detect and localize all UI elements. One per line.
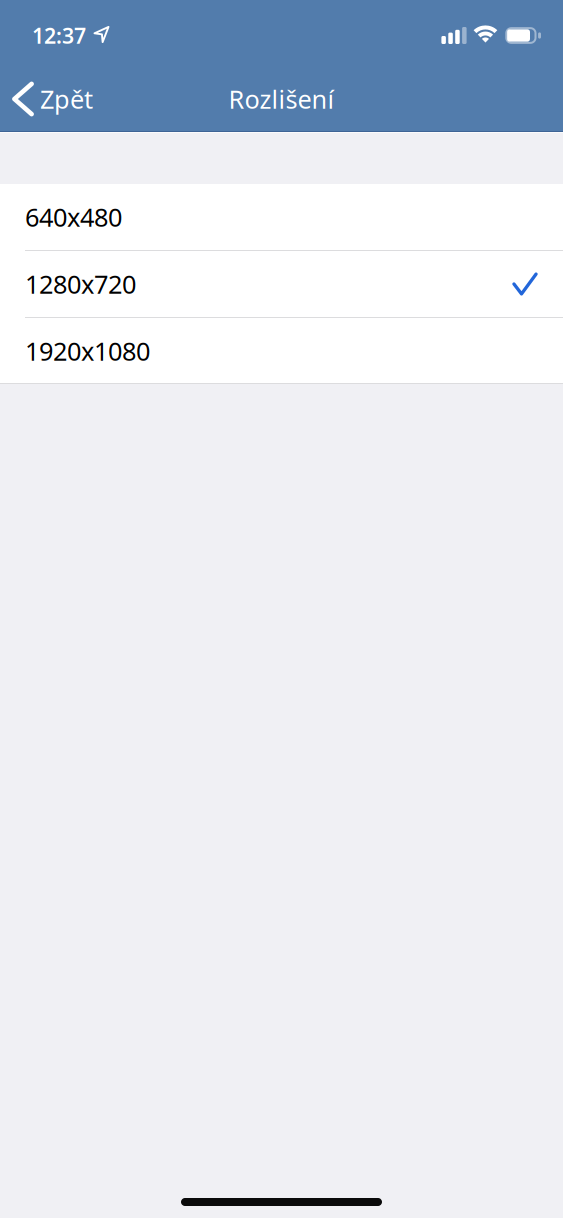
staticText: 640x480 <box>25 200 122 234</box>
button[interactable]: 1280x720 <box>0 251 563 317</box>
staticText: Rozlišení <box>228 82 334 116</box>
button[interactable]: 640x480 <box>0 184 563 250</box>
staticText: Zpět <box>40 82 93 116</box>
staticText: 1920x1080 <box>25 334 150 368</box>
staticText: 1280x720 <box>25 267 136 301</box>
button[interactable]: 1920x1080 <box>0 318 563 384</box>
staticText: 12:37 <box>32 21 86 50</box>
button[interactable]: Zpět <box>0 66 107 132</box>
